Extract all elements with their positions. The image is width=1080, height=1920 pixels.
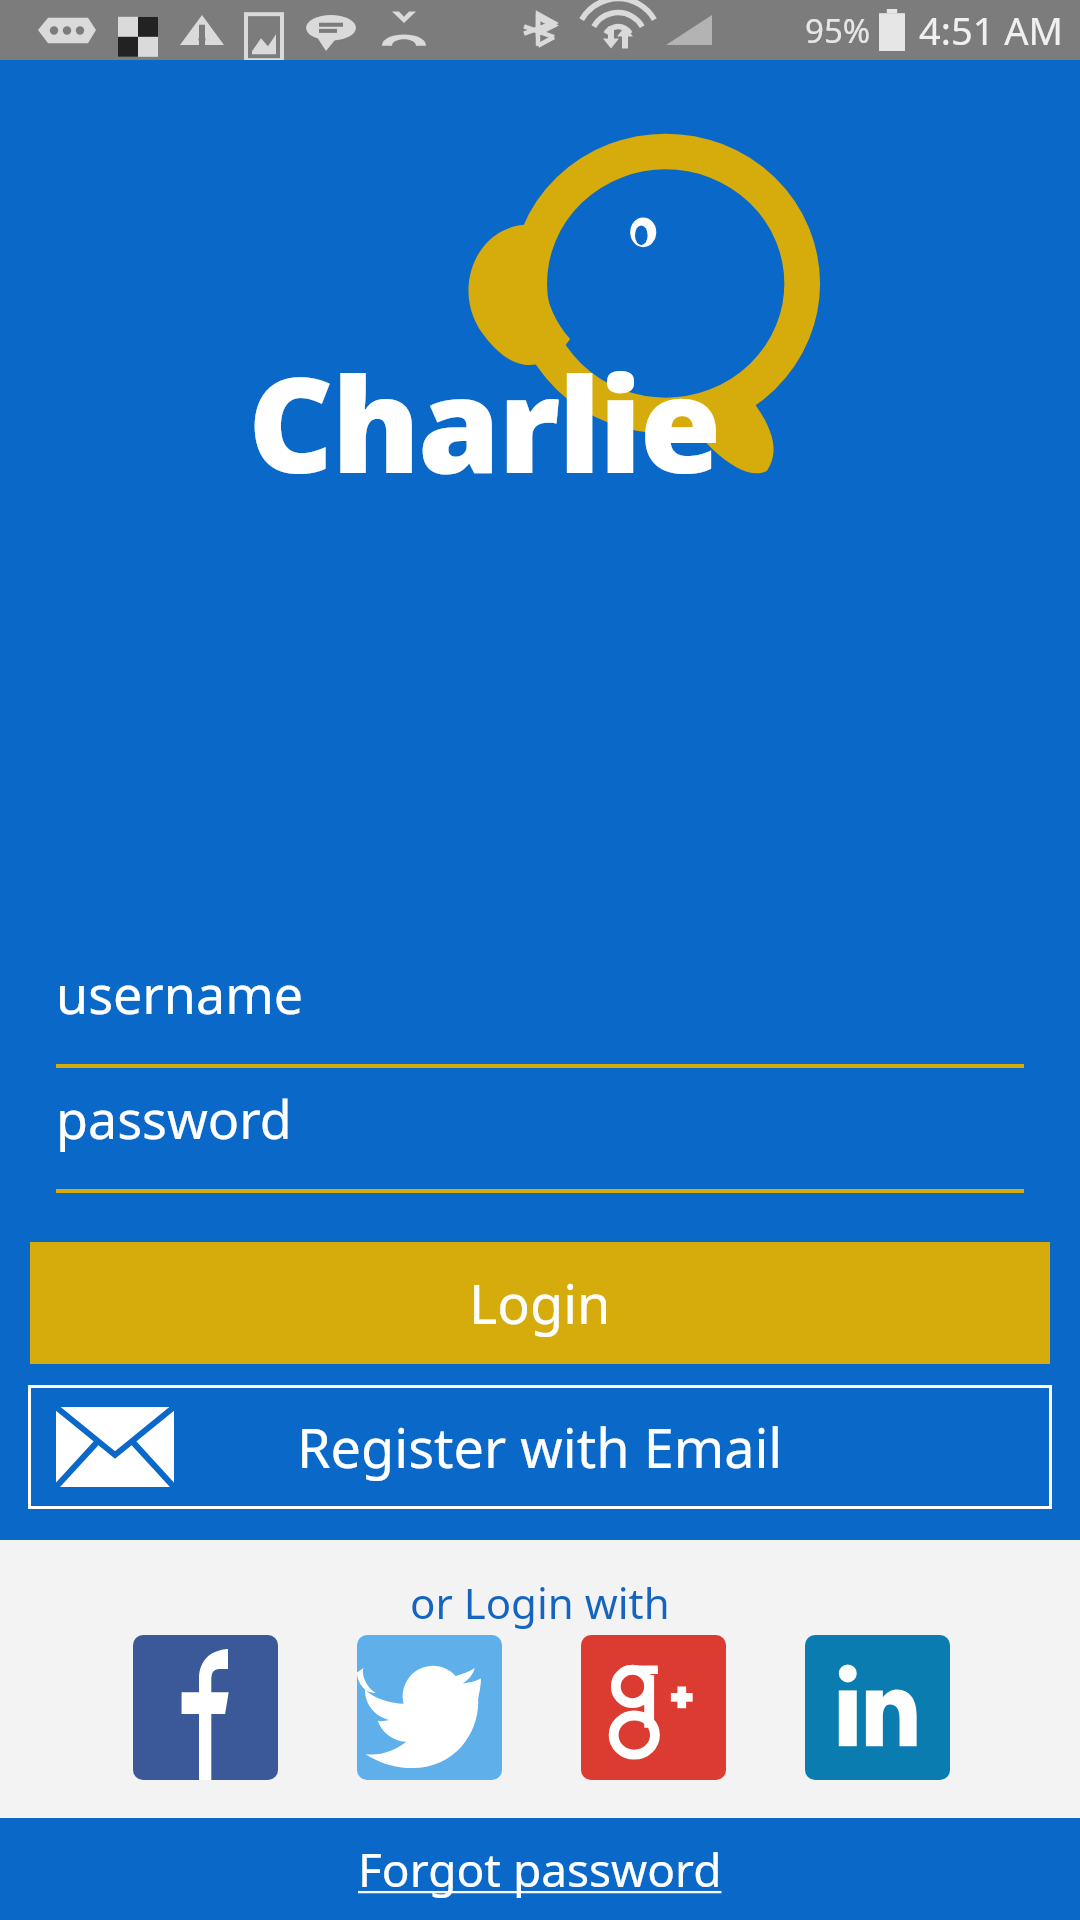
staticText: Login bbox=[469, 1266, 611, 1340]
staticText: 95% bbox=[805, 8, 871, 53]
staticText: Charlie bbox=[248, 332, 720, 512]
button[interactable]: Google Plus bbox=[581, 1635, 726, 1780]
staticText: 4:51 AM bbox=[919, 4, 1064, 56]
button[interactable]: LinkedIn bbox=[805, 1635, 950, 1780]
staticText: or Login with bbox=[410, 1574, 670, 1631]
button[interactable]: Forgot password bbox=[0, 1818, 1080, 1920]
button[interactable]: Register with Email bbox=[28, 1385, 1052, 1509]
staticText: username bbox=[56, 958, 304, 1029]
button[interactable]: password bbox=[56, 1075, 1024, 1193]
button[interactable]: Twitter bbox=[357, 1635, 502, 1780]
button[interactable]: username bbox=[56, 950, 1024, 1068]
staticText: Forgot password bbox=[358, 1838, 722, 1901]
staticText: password bbox=[56, 1083, 292, 1154]
button[interactable]: Facebook bbox=[133, 1635, 278, 1780]
staticText: Register with Email bbox=[297, 1410, 783, 1484]
button[interactable]: Login bbox=[30, 1242, 1050, 1364]
